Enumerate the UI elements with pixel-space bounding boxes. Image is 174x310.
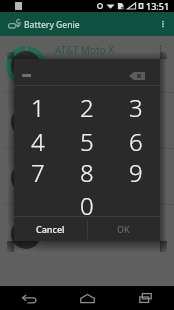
- button[interactable]: 1: [14, 91, 62, 124]
- button[interactable]: 3: [112, 91, 160, 124]
- button[interactable]: 9: [112, 156, 160, 189]
- staticText: Cancel: [36, 223, 65, 235]
- button[interactable]: Delete: [125, 68, 149, 84]
- staticText: 7: [31, 156, 45, 189]
- button[interactable]: More options: [154, 15, 172, 33]
- staticText: 6: [129, 125, 143, 158]
- staticText: 2: [80, 91, 94, 124]
- button[interactable]: Device menu: [152, 40, 168, 56]
- button[interactable]: 6: [112, 125, 160, 158]
- staticText: Battery Genie: [24, 19, 80, 31]
- button[interactable]: 8: [63, 156, 111, 189]
- staticText: AT&T Moto X: [55, 43, 115, 57]
- button[interactable]: 4: [14, 125, 62, 158]
- button[interactable]: Back: [0, 286, 58, 310]
- staticText: 1: [31, 91, 45, 124]
- button[interactable]: 7: [14, 156, 62, 189]
- button[interactable]: Home: [58, 286, 116, 310]
- button[interactable]: 2: [63, 91, 111, 124]
- button[interactable]: 0: [63, 189, 111, 222]
- staticText: 9: [129, 156, 143, 189]
- button[interactable]: OK: [87, 217, 160, 241]
- button[interactable]: 5: [63, 125, 111, 158]
- staticText: 13:51: [146, 0, 170, 12]
- staticText: 3: [129, 91, 143, 124]
- button[interactable]: Cancel: [14, 217, 87, 241]
- button[interactable]: Recent apps: [116, 286, 174, 310]
- staticText: 0: [80, 189, 94, 222]
- staticText: 8: [80, 156, 94, 189]
- staticText: 4: [31, 125, 45, 158]
- staticText: 5: [80, 125, 94, 158]
- staticText: OK: [117, 223, 130, 235]
